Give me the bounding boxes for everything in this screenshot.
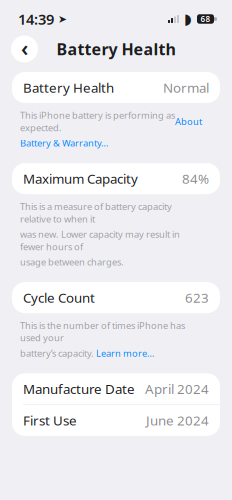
staticText: First Use [23,412,77,429]
staticText: Battery Health [56,38,175,60]
staticText: Normal [163,79,209,96]
button[interactable]: Battery Health [12,72,220,103]
staticText: 84% [182,170,209,187]
staticText: This is a measure of battery capacity re… [20,200,172,225]
staticText: Manufacture Date [23,380,135,398]
staticText: 623 [185,289,209,306]
staticText: April 2024 [145,380,209,398]
staticText: ◗ [184,11,192,27]
staticText: was new. Lower capacity may result in fe… [20,228,180,253]
staticText: Learn more… [96,347,154,359]
staticText: This iPhone battery is performing as exp… [20,109,175,134]
button[interactable]: Maximum Capacity [12,163,220,194]
staticText: Battery Health [23,79,114,96]
button[interactable]: First Use [12,405,220,436]
button[interactable]: Manufacture Date [12,373,220,404]
staticText: Battery & Warranty… [20,137,108,149]
staticText: This is the number of times iPhone has u… [20,319,185,344]
button[interactable]: Cycle Count [12,282,220,313]
staticText: 68 [200,14,210,24]
button[interactable]: Back [11,34,38,64]
staticText: 14:39 [18,9,54,29]
staticText: June 2024 [146,412,209,429]
staticText: battery’s capacity. [20,347,96,359]
staticText: ➤ [54,13,67,25]
staticText: usage between charges. [20,256,124,268]
staticText: ‹ [21,34,28,62]
staticText: Maximum Capacity [23,170,138,187]
staticText: Cycle Count [23,289,95,306]
staticText: About [175,115,202,128]
